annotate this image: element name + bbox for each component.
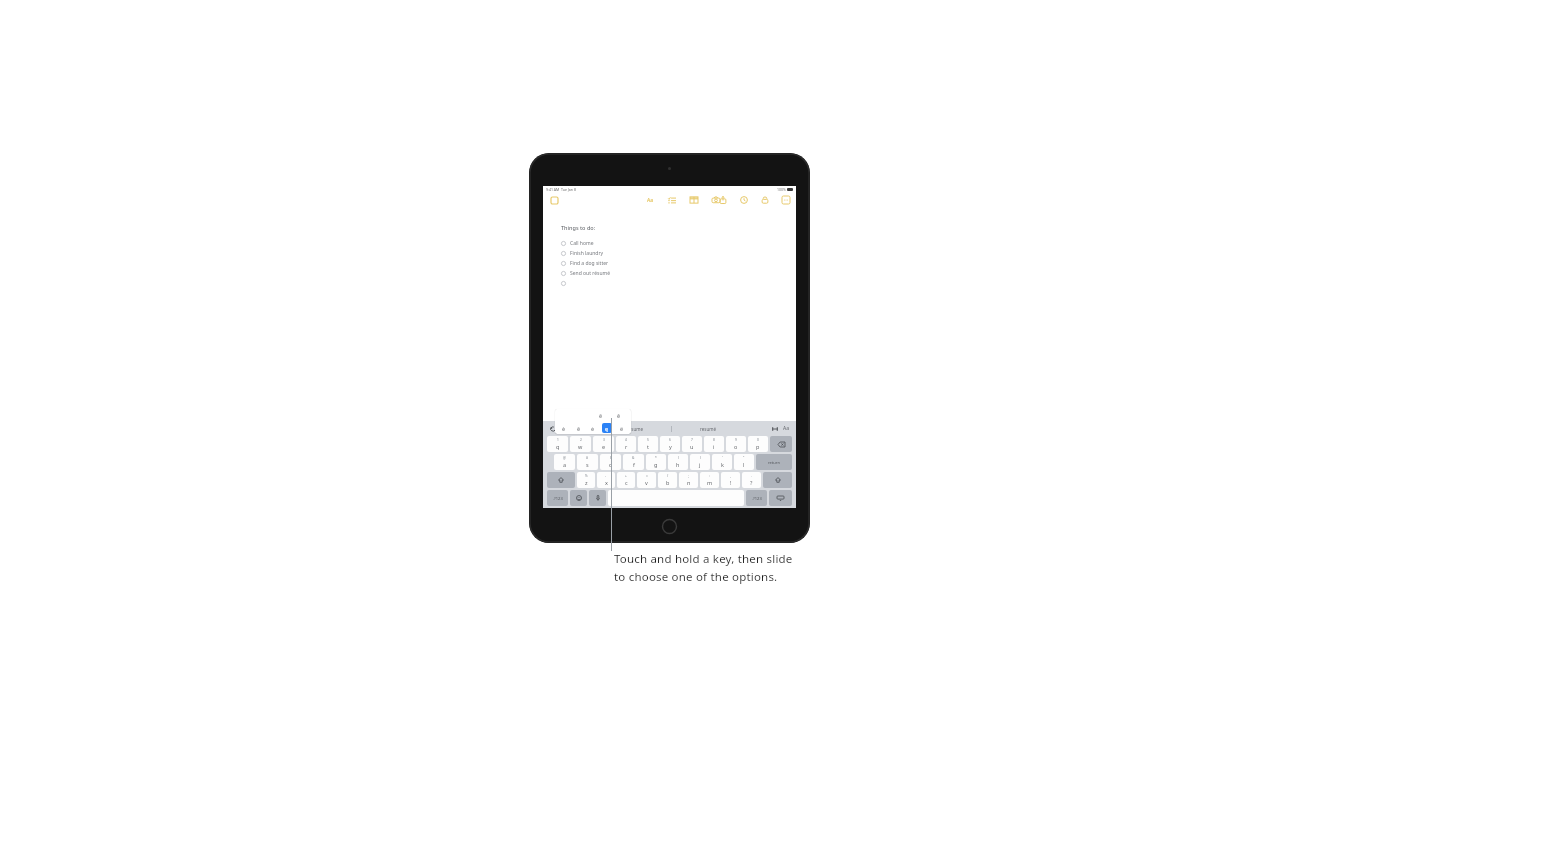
button[interactable] xyxy=(561,278,566,288)
button[interactable]: Delete xyxy=(770,436,792,452)
staticText: r xyxy=(625,443,628,450)
button[interactable]: Keyboard layout xyxy=(769,423,780,434)
button[interactable]: Table xyxy=(689,195,699,205)
button[interactable]: ę xyxy=(602,423,612,433)
button[interactable]: Notes list xyxy=(550,196,559,205)
staticText: , xyxy=(730,474,731,478)
button[interactable]: Finish laundry xyxy=(561,248,604,258)
button[interactable]: .?123 xyxy=(547,490,568,506)
button[interactable]: , xyxy=(721,472,740,488)
button[interactable]: Share xyxy=(718,195,728,205)
button[interactable]: 5 xyxy=(638,436,658,452)
button[interactable]: # xyxy=(577,454,598,470)
staticText: 9 xyxy=(735,438,737,442)
button[interactable]: Lock xyxy=(760,195,770,205)
button[interactable]: Emoji xyxy=(570,490,587,506)
button[interactable]: Checklist xyxy=(667,195,677,205)
button[interactable]: resume xyxy=(599,423,671,434)
button[interactable]: ė xyxy=(588,423,598,433)
staticText: v xyxy=(645,479,648,486)
button[interactable]: 6 xyxy=(660,436,680,452)
button[interactable]: " xyxy=(734,454,754,470)
button[interactable]: Text format xyxy=(780,423,793,434)
staticText: 4 xyxy=(625,438,627,442)
button[interactable]: * xyxy=(646,454,666,470)
staticText: " xyxy=(743,456,745,460)
staticText: 5 xyxy=(647,438,649,442)
button[interactable]: Dictate xyxy=(589,490,606,506)
button[interactable]: Find a dog sitter xyxy=(561,258,609,268)
button[interactable]: ë xyxy=(617,423,627,433)
staticText: f xyxy=(633,461,635,468)
staticText: d xyxy=(609,461,613,468)
button[interactable]: Shift right xyxy=(763,472,792,488)
staticText: j xyxy=(699,461,701,468)
button[interactable]: Hide keyboard xyxy=(769,490,792,506)
button[interactable]: Send out résumé xyxy=(561,268,611,278)
staticText: Finish laundry xyxy=(570,250,604,257)
button[interactable]: ; xyxy=(679,472,698,488)
button[interactable]: Text format xyxy=(645,195,655,205)
button[interactable]: 3 xyxy=(593,436,614,452)
staticText: * xyxy=(655,456,657,460)
button[interactable]: . xyxy=(742,472,761,488)
button[interactable]: Space xyxy=(608,490,744,506)
button[interactable]: + xyxy=(617,472,635,488)
button[interactable]: = xyxy=(637,472,656,488)
button[interactable]: 0 xyxy=(748,436,768,452)
button[interactable]: - xyxy=(597,472,615,488)
button[interactable]: return xyxy=(756,454,792,470)
button[interactable]: ( xyxy=(668,454,688,470)
staticText: ē xyxy=(577,425,581,432)
staticText: k xyxy=(721,461,724,468)
button[interactable]: More xyxy=(781,195,791,205)
staticText: w xyxy=(578,443,583,450)
button[interactable]: ē xyxy=(574,423,584,433)
button[interactable]: @ xyxy=(554,454,575,470)
button[interactable]: ĕ xyxy=(596,411,605,420)
staticText: ) xyxy=(700,456,701,460)
button[interactable]: 8 xyxy=(704,436,724,452)
staticText: % xyxy=(585,474,588,478)
staticText: & xyxy=(632,456,635,460)
staticText: 6 xyxy=(669,438,671,442)
staticText: Touch and hold a key, then slide xyxy=(614,551,793,567)
staticText: to choose one of the options. xyxy=(614,569,778,585)
staticText: # xyxy=(586,456,589,460)
button[interactable]: è xyxy=(559,423,569,433)
button[interactable]: % xyxy=(577,472,595,488)
button[interactable]: : xyxy=(700,472,719,488)
staticText: Find a dog sitter xyxy=(570,260,609,267)
staticText: Send out résumé xyxy=(570,270,611,277)
button[interactable]: ě xyxy=(614,411,623,420)
staticText: 1 xyxy=(557,438,559,442)
button[interactable]: Media xyxy=(711,195,721,205)
button[interactable]: & xyxy=(623,454,644,470)
button[interactable]: ' xyxy=(712,454,732,470)
staticText: Aa xyxy=(783,425,790,432)
staticText: 3 xyxy=(603,438,605,442)
button[interactable]: 1 xyxy=(547,436,568,452)
button[interactable]: / xyxy=(658,472,677,488)
staticText: ' xyxy=(722,456,723,460)
button[interactable]: 9 xyxy=(726,436,746,452)
button[interactable]: .?123 xyxy=(746,490,767,506)
staticText: è xyxy=(562,425,566,432)
staticText: - xyxy=(605,474,607,478)
button[interactable]: 7 xyxy=(682,436,702,452)
button[interactable]: ) xyxy=(690,454,710,470)
staticText: 2 xyxy=(580,438,582,442)
staticText: m xyxy=(707,479,713,486)
button[interactable]: resumé xyxy=(672,423,744,434)
button[interactable]: Call home xyxy=(561,238,594,248)
button[interactable]: Shift xyxy=(547,472,575,488)
staticText: q xyxy=(556,443,560,450)
staticText: : xyxy=(709,474,710,478)
button[interactable]: 4 xyxy=(616,436,636,452)
button[interactable]: Compose xyxy=(739,195,749,205)
staticText: b xyxy=(666,479,670,486)
button[interactable]: Undo xyxy=(546,423,560,434)
button[interactable]: 2 xyxy=(570,436,591,452)
staticText: = xyxy=(646,474,648,478)
button[interactable]: $ xyxy=(600,454,621,470)
